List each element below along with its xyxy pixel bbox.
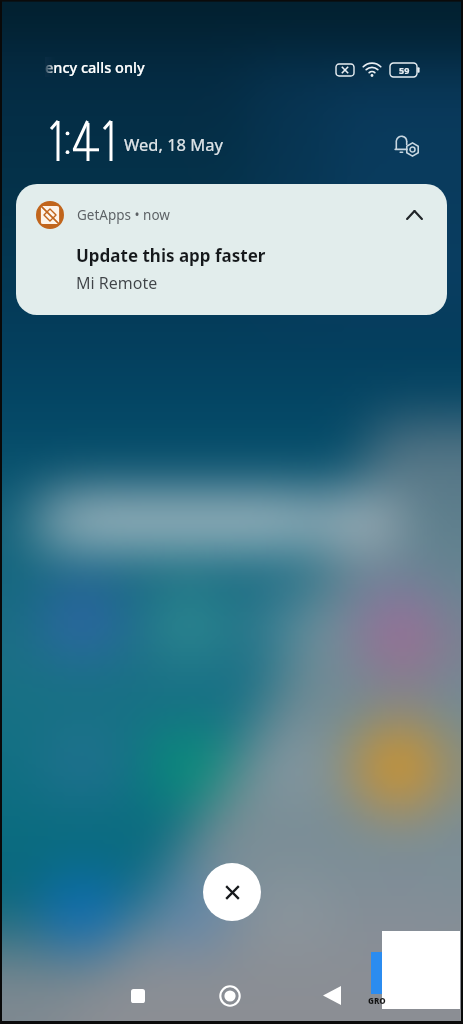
button[interactable]: Collapse notification (400, 201, 428, 229)
staticText: Wed, 18 May (124, 133, 223, 155)
button[interactable]: Clear all notifications (203, 863, 261, 921)
button[interactable]: Recents (116, 981, 160, 1011)
staticText: 59 (399, 64, 410, 76)
staticText: GRO (368, 995, 386, 1006)
button[interactable]: Home (208, 981, 252, 1011)
staticText: Update this app faster (76, 244, 266, 267)
button[interactable]: GetApps • now (16, 184, 447, 315)
staticText: Mi Remote (76, 272, 158, 294)
button[interactable]: Notification settings (390, 128, 428, 166)
staticText: GetApps • now (77, 206, 170, 224)
staticText: ency calls only (45, 57, 145, 77)
button[interactable]: Back (310, 980, 354, 1010)
